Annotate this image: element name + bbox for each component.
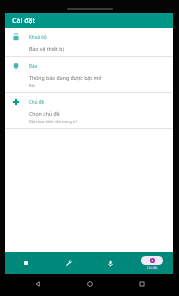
button[interactable]: Voice <box>89 252 131 274</box>
button[interactable]: Báo <box>5 57 173 92</box>
staticText: Thông báo đang được bật mở <box>29 74 102 81</box>
staticText: Cài đặt <box>147 266 158 270</box>
button[interactable]: Screen <box>5 252 47 274</box>
button[interactable]: Khoá bộ <box>5 28 173 56</box>
button[interactable]: Back <box>31 277 45 291</box>
button[interactable]: Chủ đề <box>5 93 173 128</box>
staticText: Báo <box>29 63 38 69</box>
staticText: Cài đặt <box>12 16 36 26</box>
staticText: Chọn chủ đề <box>29 110 60 117</box>
staticText: Bật <box>29 83 35 88</box>
button[interactable]: Tools <box>47 252 89 274</box>
staticText: Khoá bộ <box>29 34 47 40</box>
button[interactable]: Recent apps <box>135 277 149 291</box>
staticText: Chủ đề <box>29 99 45 105</box>
button[interactable]: Cài đặt <box>131 252 173 274</box>
button[interactable]: Home <box>83 277 97 291</box>
staticText: Đặt theo hình nền trang trí <box>29 119 77 124</box>
staticText: Bảo vệ thiết bị <box>29 45 64 52</box>
button[interactable]: Cài đặt <box>5 13 173 28</box>
